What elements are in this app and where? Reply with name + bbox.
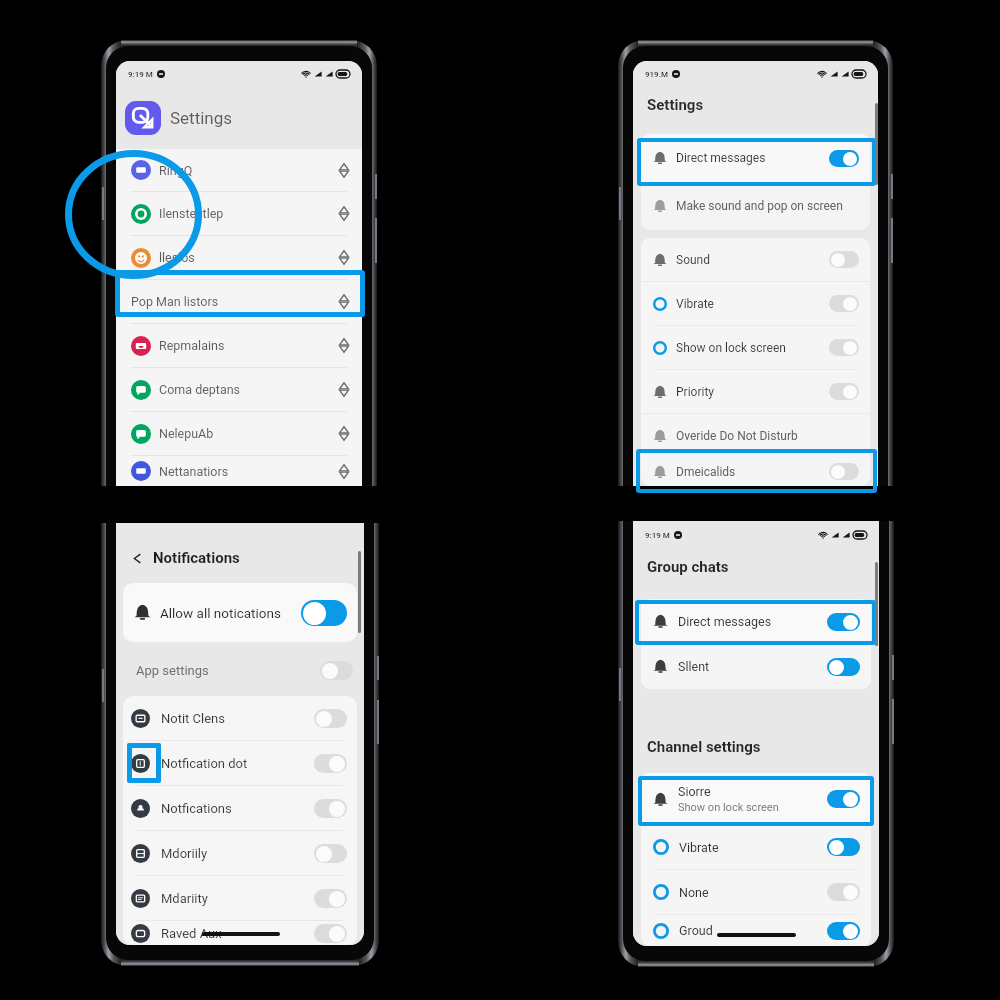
button[interactable] (125, 101, 161, 135)
button[interactable]: Groud (641, 915, 871, 946)
button[interactable]: Sound (641, 238, 870, 281)
button[interactable]: Ilenstestlep (116, 192, 362, 235)
button[interactable] (829, 339, 859, 356)
button[interactable] (827, 658, 860, 676)
staticText: NelepuAb (159, 426, 214, 441)
button[interactable]: Raved Aux (123, 921, 357, 945)
button[interactable]: Notit Clens (123, 696, 357, 740)
button[interactable]: NelepuAb (116, 412, 362, 455)
other: Expand (339, 338, 349, 353)
button[interactable] (827, 838, 860, 856)
staticText: Overide Do Not Disturb (676, 429, 798, 443)
button[interactable]: RingQ (116, 149, 362, 191)
staticText: Show on lock screen (678, 801, 779, 814)
button[interactable]: Make sound and pop on screen (641, 182, 870, 230)
button[interactable] (829, 463, 859, 480)
button[interactable] (827, 790, 860, 808)
button[interactable]: Pop Man listors (116, 280, 362, 323)
staticText: Notit Clens (161, 711, 225, 726)
staticText: Coma deptans (159, 382, 241, 397)
button[interactable]: Overide Do Not Disturb (641, 414, 870, 457)
staticText: Mdoriily (161, 846, 208, 861)
button[interactable]: Allow all notications (123, 583, 357, 642)
button[interactable]: Show on lock screen (641, 326, 870, 369)
staticText: App settings (136, 663, 209, 678)
other: Expand (339, 382, 349, 397)
staticText: Groud (679, 923, 713, 938)
staticText: lleslos (159, 250, 195, 265)
staticText: Direct messages (678, 614, 772, 629)
button[interactable]: None (641, 870, 871, 914)
button[interactable]: Vibrate (641, 825, 871, 869)
other: Expand (339, 464, 349, 479)
button[interactable]: Nettanatiors (116, 456, 362, 486)
button[interactable]: Dmeicalids (641, 457, 870, 486)
staticText: Ilenstestlep (159, 206, 224, 221)
button[interactable] (827, 922, 860, 940)
button[interactable]: Notfication dot (123, 741, 357, 785)
staticText: Nettanatiors (159, 464, 229, 479)
staticText: Vibrate (679, 840, 719, 855)
other: Expand (339, 250, 349, 265)
staticText: Make sound and pop on screen (676, 199, 843, 213)
staticText: Show on lock screen (676, 341, 786, 355)
button[interactable] (314, 844, 347, 863)
staticText: Dmeicalids (676, 465, 736, 479)
button[interactable]: App settings (116, 648, 364, 692)
staticText: Settings (170, 108, 233, 128)
button[interactable]: Notfications (123, 786, 357, 830)
button[interactable]: Direct messages (641, 134, 870, 182)
button[interactable] (829, 150, 859, 167)
button[interactable]: Mdoriily (123, 831, 357, 875)
staticText: None (679, 885, 709, 900)
staticText: 9:19 M (645, 531, 670, 540)
staticText: Sound (676, 253, 710, 267)
button[interactable]: Vibrate (641, 282, 870, 325)
button[interactable] (829, 383, 859, 400)
button[interactable] (314, 754, 347, 773)
button[interactable] (827, 613, 860, 631)
staticText: Notfications (161, 801, 232, 816)
staticText: Siorre (678, 784, 711, 799)
button[interactable] (314, 799, 347, 818)
button[interactable]: Repmalains (116, 324, 362, 367)
button[interactable] (827, 883, 860, 901)
button[interactable]: Priority (641, 370, 870, 413)
button[interactable] (320, 661, 353, 680)
button[interactable]: Direct messages (641, 599, 871, 644)
button[interactable] (314, 889, 347, 908)
button[interactable]: lleslos (116, 236, 362, 279)
staticText: Priority (676, 385, 714, 399)
button[interactable]: Coma deptans (116, 368, 362, 411)
staticText: Raved Aux (161, 926, 222, 941)
staticText: RingQ (159, 163, 193, 178)
staticText: Notifications (153, 549, 240, 567)
staticText: Pop Man listors (131, 294, 219, 309)
button[interactable] (829, 295, 859, 312)
other: Expand (339, 163, 349, 178)
other: Expand (339, 294, 349, 309)
button[interactable]: Siorre (641, 773, 871, 825)
staticText: Group chats (647, 558, 729, 576)
staticText: Allow all notications (160, 605, 281, 621)
button[interactable]: Back (131, 552, 144, 565)
staticText: Mdariity (161, 891, 208, 906)
staticText: Repmalains (159, 338, 225, 353)
staticText: Direct messages (676, 151, 766, 165)
button[interactable] (314, 709, 347, 728)
button[interactable] (301, 600, 347, 626)
other: Expand (339, 426, 349, 441)
staticText: Settings (647, 96, 704, 114)
staticText: 919.M (645, 70, 668, 79)
staticText: Vibrate (676, 297, 714, 311)
staticText: Sllent (678, 659, 710, 674)
button[interactable]: Mdariity (123, 876, 357, 920)
button[interactable]: Sllent (641, 644, 871, 689)
staticText: Notfication dot (161, 756, 248, 771)
staticText: 9:19 M (128, 70, 153, 79)
other: Expand (339, 206, 349, 221)
staticText: Channel settings (647, 738, 761, 756)
button[interactable] (314, 924, 347, 943)
button[interactable] (829, 251, 859, 268)
